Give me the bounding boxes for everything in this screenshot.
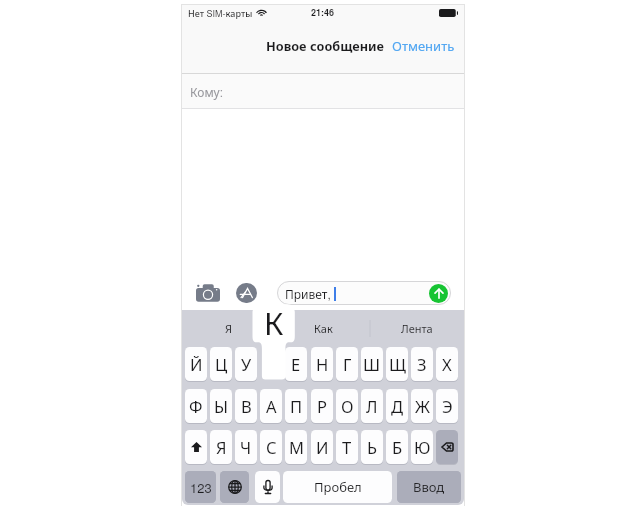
button[interactable]: Т <box>336 430 358 464</box>
button[interactable]: Э <box>436 389 458 423</box>
other: Backspace <box>441 442 454 452</box>
button[interactable]: Ж <box>411 389 433 423</box>
button[interactable]: В <box>235 389 257 423</box>
staticText: У <box>241 353 252 375</box>
button[interactable]: Отменить <box>392 37 455 55</box>
button[interactable]: Привет, <box>277 281 451 305</box>
button[interactable]: Кому: <box>182 74 464 108</box>
button[interactable]: Shift <box>185 430 207 464</box>
staticText: С <box>266 436 277 458</box>
staticText: З <box>417 353 427 375</box>
button[interactable]: О <box>336 389 358 423</box>
button[interactable]: П <box>285 389 307 423</box>
button[interactable]: Backspace <box>436 430 458 464</box>
button[interactable]: Ш <box>361 347 383 381</box>
button[interactable]: Е <box>285 347 307 381</box>
staticText: Е <box>291 353 301 375</box>
staticText: И <box>316 436 329 458</box>
button[interactable]: Ввод <box>397 471 461 503</box>
other: Shift <box>191 442 202 452</box>
button[interactable]: Ч <box>235 430 257 464</box>
staticText: 123 <box>190 478 212 497</box>
button[interactable]: Д <box>386 389 408 423</box>
button[interactable]: А <box>260 389 282 423</box>
other: Switch language <box>228 480 242 494</box>
button[interactable]: С <box>260 430 282 464</box>
staticText: Н <box>316 353 329 375</box>
staticText: Б <box>392 436 403 458</box>
staticText: Привет, <box>285 285 331 302</box>
button[interactable]: Й <box>185 347 207 381</box>
button[interactable]: Я <box>182 310 276 346</box>
other: Dictation <box>263 480 273 495</box>
staticText: Д <box>391 395 404 417</box>
staticText: Отменить <box>392 37 455 55</box>
staticText: 21:46 <box>311 6 335 19</box>
button[interactable]: Н <box>311 347 333 381</box>
staticText: М <box>289 436 304 458</box>
button[interactable]: Switch language <box>220 471 249 503</box>
button[interactable]: З <box>411 347 433 381</box>
staticText: Щ <box>389 353 406 375</box>
staticText: Ввод <box>413 478 445 496</box>
staticText: Х <box>442 353 452 375</box>
staticText: Я <box>225 321 233 336</box>
staticText: Й <box>190 353 203 375</box>
staticText: Ю <box>414 436 431 458</box>
button[interactable]: App Store <box>236 283 257 303</box>
staticText: О <box>341 395 354 417</box>
staticText: Лента <box>401 321 433 336</box>
staticText: Как <box>314 321 333 336</box>
staticText: Э <box>442 395 453 417</box>
button[interactable]: Г <box>336 347 358 381</box>
button[interactable]: Dictation <box>255 471 280 503</box>
staticText: К <box>264 302 284 340</box>
button[interactable]: Как <box>276 310 370 346</box>
staticText: Ф <box>189 395 203 417</box>
staticText: Л <box>366 395 378 417</box>
button[interactable]: Л <box>361 389 383 423</box>
staticText: Я <box>216 436 227 458</box>
button[interactable]: Camera <box>196 283 220 302</box>
staticText: Ь <box>367 436 378 458</box>
staticText: Ы <box>214 395 229 417</box>
button[interactable]: Р <box>311 389 333 423</box>
staticText: Р <box>317 395 327 417</box>
button[interactable]: М <box>285 430 307 464</box>
staticText: Т <box>342 436 352 458</box>
staticText: В <box>241 395 252 417</box>
staticText: Нет SIM-карты <box>188 7 253 20</box>
staticText: Кому: <box>190 83 224 100</box>
button[interactable]: Х <box>436 347 458 381</box>
button[interactable]: Ы <box>210 389 232 423</box>
button[interactable]: Я <box>210 430 232 464</box>
staticText: А <box>266 395 277 417</box>
button[interactable]: И <box>311 430 333 464</box>
button[interactable]: Пробел <box>283 471 392 503</box>
button[interactable]: Ь <box>361 430 383 464</box>
button[interactable]: Лента <box>370 310 464 346</box>
staticText: Ш <box>363 353 381 375</box>
staticText: Пробел <box>314 478 362 496</box>
button[interactable]: Ф <box>185 389 207 423</box>
staticText: П <box>290 395 303 417</box>
staticText: Ж <box>415 395 430 417</box>
button[interactable]: Новое сообщение <box>266 37 385 55</box>
staticText: Ц <box>215 353 228 375</box>
button[interactable]: Ю <box>411 430 433 464</box>
button[interactable]: Ц <box>210 347 232 381</box>
button[interactable]: Щ <box>386 347 408 381</box>
staticText: Ч <box>240 436 252 458</box>
button[interactable]: Б <box>386 430 408 464</box>
staticText: Г <box>343 353 352 375</box>
button[interactable]: У <box>235 347 257 381</box>
button[interactable]: 123 <box>185 471 216 503</box>
button[interactable]: Send <box>429 284 448 303</box>
